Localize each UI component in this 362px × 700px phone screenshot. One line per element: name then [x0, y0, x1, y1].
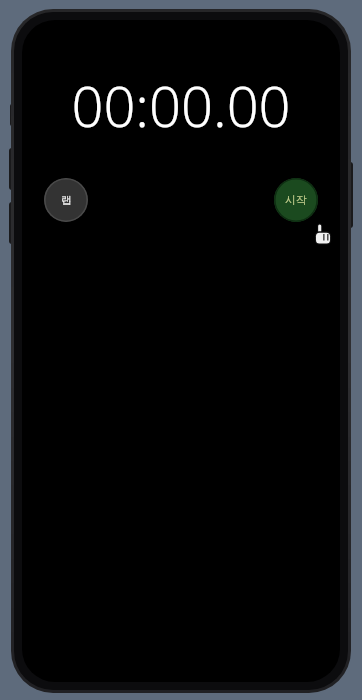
button[interactable]: 랩 — [44, 178, 88, 222]
staticText: 시작 — [285, 193, 307, 207]
staticText: 00:00.00 — [22, 67, 340, 143]
button[interactable]: 시작 — [274, 178, 318, 222]
staticText: 랩 — [61, 193, 72, 207]
other: Pointer — [312, 223, 334, 245]
